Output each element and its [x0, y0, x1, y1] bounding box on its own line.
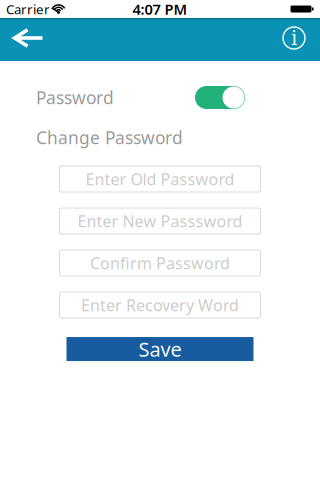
staticText: Change Password [36, 126, 183, 149]
staticText: Enter Recovery Word [81, 294, 239, 316]
button[interactable]: Save [66, 337, 253, 361]
staticText: Save [138, 336, 181, 362]
staticText: Confirm Password [90, 252, 230, 274]
staticText: 4:07 PM [132, 0, 187, 19]
button[interactable]: Confirm Password [59, 250, 260, 276]
staticText: Enter New Passsword [77, 210, 242, 232]
staticText: Enter Old Password [85, 168, 234, 190]
button[interactable]: Password toggle [195, 86, 245, 109]
button[interactable]: Enter Old Password [59, 166, 260, 192]
button[interactable]: Back [13, 28, 43, 48]
button[interactable]: Enter New Passsword [59, 208, 260, 234]
staticText: Carrier [6, 0, 50, 18]
staticText: i [291, 26, 297, 50]
staticText: Password [36, 86, 114, 109]
button[interactable]: Enter Recovery Word [59, 292, 260, 318]
button[interactable]: Info [283, 27, 305, 49]
